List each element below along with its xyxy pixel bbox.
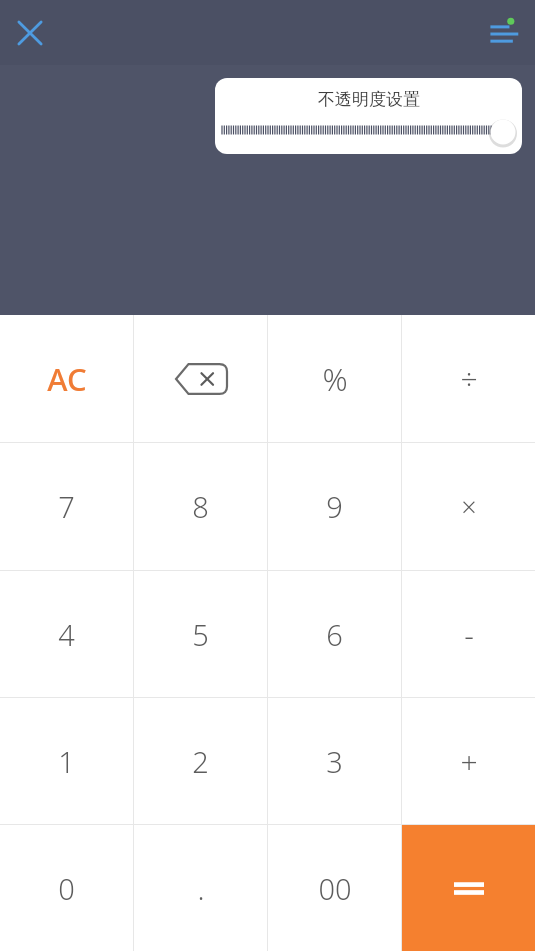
button[interactable]: 0 <box>0 825 133 951</box>
staticText: 00 <box>318 869 352 908</box>
button[interactable]: 9 <box>268 443 401 570</box>
button[interactable]: 00 <box>268 825 401 951</box>
staticText: × <box>461 488 477 525</box>
staticText: 8 <box>192 487 209 526</box>
staticText: 3 <box>326 742 343 781</box>
button[interactable]: AC <box>0 315 133 442</box>
button[interactable]: 3 <box>268 698 401 824</box>
button[interactable]: Close <box>5 8 55 58</box>
staticText: 5 <box>192 615 209 654</box>
staticText: 4 <box>58 615 75 654</box>
button[interactable]: 2 <box>134 698 267 824</box>
button[interactable]: + <box>402 698 535 824</box>
button[interactable]: 8 <box>134 443 267 570</box>
staticText: - <box>464 614 474 655</box>
button[interactable]: 5 <box>134 571 267 697</box>
staticText: 9 <box>326 487 343 526</box>
staticText: 不透明度设置 <box>318 89 420 110</box>
button[interactable]: ÷ <box>402 315 535 442</box>
button[interactable]: Menu <box>479 8 529 58</box>
staticText: 2 <box>192 742 209 781</box>
staticText: ÷ <box>460 358 478 399</box>
staticText: 1 <box>58 742 75 781</box>
button[interactable]: × <box>402 443 535 570</box>
staticText: 0 <box>58 869 75 908</box>
staticText: AC <box>47 358 87 400</box>
button[interactable]: % <box>268 315 401 442</box>
staticText: 7 <box>58 487 75 526</box>
staticText: + <box>460 741 478 782</box>
staticText: % <box>322 358 348 400</box>
button[interactable]: 1 <box>0 698 133 824</box>
button[interactable]: - <box>402 571 535 697</box>
button[interactable]: 4 <box>0 571 133 697</box>
button[interactable]: 6 <box>268 571 401 697</box>
button[interactable]: Opacity slider <box>489 118 517 146</box>
button[interactable]: Backspace <box>134 315 267 442</box>
staticText: . <box>197 869 205 908</box>
button[interactable]: 7 <box>0 443 133 570</box>
staticText: 6 <box>326 615 343 654</box>
button[interactable]: Equals <box>402 825 535 951</box>
